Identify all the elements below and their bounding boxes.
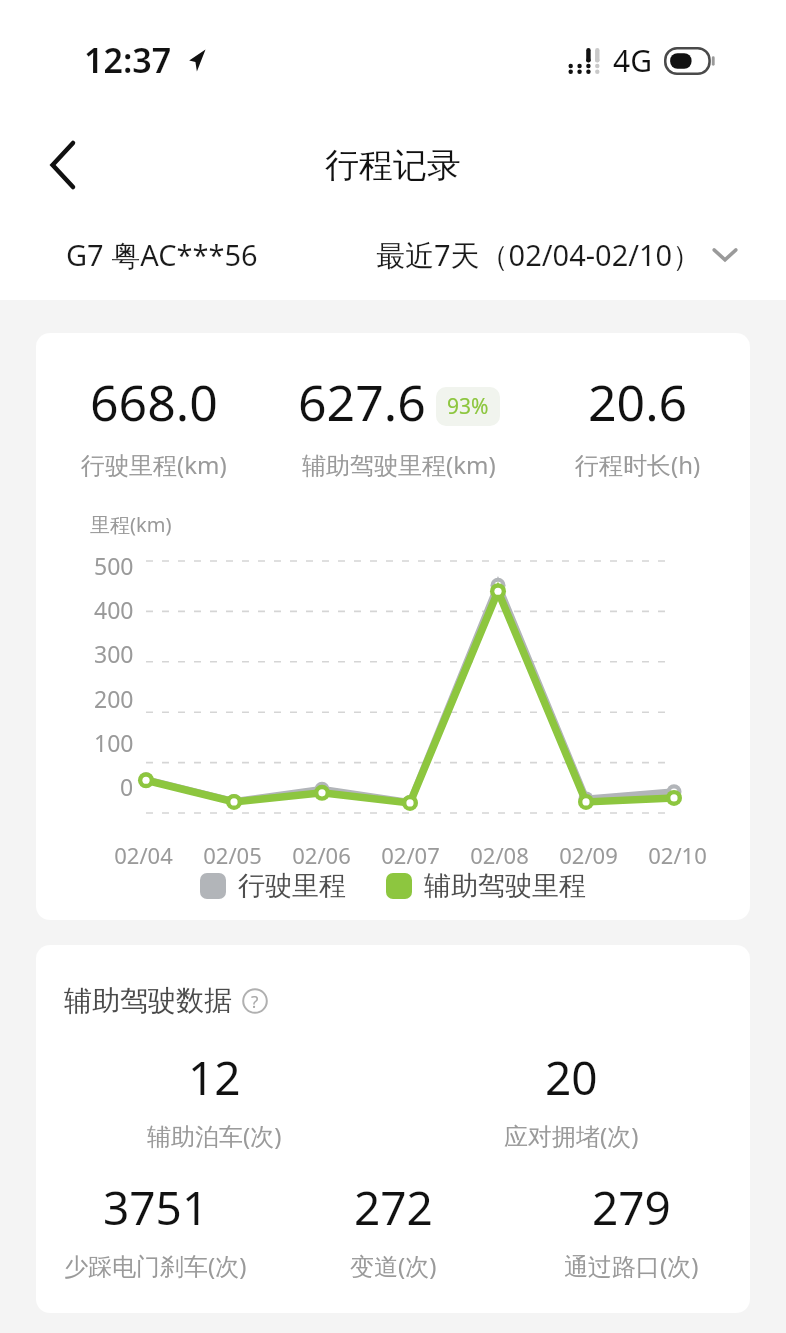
staticText: 668.0 [90,368,218,436]
staticText: 辅助驾驶数据 [64,983,232,1018]
staticText: 行驶里程(km) [81,448,227,481]
staticText: 02/05 [203,840,262,870]
staticText: 20.6 [588,368,688,436]
staticText: 02/09 [559,840,618,870]
staticText: 少踩电门刹车(次) [64,1249,247,1282]
staticText: 20 [545,1046,598,1109]
staticText: 272 [354,1176,433,1239]
staticText: 最近7天（02/04-02/10） [376,235,702,275]
staticText: 02/08 [470,840,529,870]
staticText: 02/04 [114,840,173,870]
staticText: 02/06 [292,840,351,870]
staticText: 12 [188,1046,241,1109]
staticText: 500 [94,550,134,581]
button[interactable]: 辅助驾驶里程 [386,869,586,903]
staticText: 400 [94,594,134,625]
staticText: 辅助泊车(次) [147,1119,282,1152]
button[interactable]: 最近7天（02/04-02/10） [376,235,738,275]
staticText: 里程(km) [90,511,172,538]
staticText: 627.6 [298,368,426,436]
button[interactable]: Back [30,131,98,199]
staticText: 4G [613,40,652,81]
staticText: ? [251,990,259,1013]
staticText: 100 [94,727,134,758]
staticText: 0 [120,771,134,802]
staticText: G7 粤AC***56 [66,235,258,275]
staticText: 12:37 [84,37,172,83]
staticText: 辅助驾驶里程 [424,869,586,903]
button[interactable]: 行驶里程 [200,869,346,903]
staticText: 279 [592,1176,671,1239]
staticText: 辅助驾驶里程(km) [302,448,496,481]
staticText: 02/10 [648,840,707,870]
staticText: 300 [94,638,134,669]
staticText: 通过路口(次) [564,1249,699,1282]
staticText: 行程记录 [325,144,461,187]
staticText: 3751 [103,1176,209,1239]
staticText: 行程时长(h) [575,448,701,481]
staticText: 应对拥堵(次) [504,1119,639,1152]
staticText: 变道(次) [350,1249,437,1282]
staticText: 行驶里程 [238,869,346,903]
staticText: 02/07 [381,840,440,870]
staticText: 200 [94,683,134,714]
button[interactable]: Help [240,986,270,1016]
staticText: 93% [447,392,489,421]
